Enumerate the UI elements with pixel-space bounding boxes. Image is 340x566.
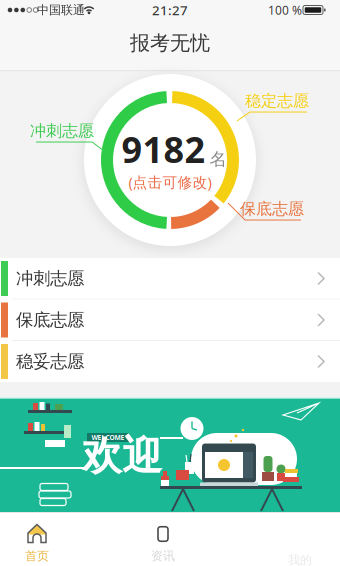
staticText: 保底志愿 (16, 309, 84, 331)
button[interactable]: 首页 (0, 512, 74, 566)
staticText: 资讯 (151, 549, 175, 563)
button[interactable]: 保底志愿 (0, 299, 340, 340)
staticText: 报考无忧 (130, 31, 210, 55)
staticText: 欢迎 (82, 431, 162, 480)
staticText: 100 % (268, 2, 302, 18)
staticText: 保底志愿 (240, 199, 304, 219)
staticText: 9182 (121, 125, 205, 173)
staticText: 我的 (288, 553, 312, 566)
staticText: 21:27 (152, 1, 188, 19)
staticText: 中国联通 (37, 3, 85, 17)
button[interactable]: 冲刺志愿 (0, 258, 340, 299)
staticText: 首页 (25, 549, 49, 563)
staticText: WELCOME (91, 433, 124, 442)
staticText: 稳定志愿 (245, 91, 309, 111)
staticText: 稳妥志愿 (16, 351, 84, 372)
staticText: 名 (209, 149, 226, 170)
staticText: 冲刺志愿 (16, 268, 84, 289)
button[interactable]: (点击可修改) (128, 172, 211, 192)
staticText: (点击可修改) (128, 172, 211, 192)
button[interactable]: 资讯 (126, 512, 200, 566)
button[interactable]: 稳妥志愿 (0, 341, 340, 382)
staticText: 冲刺志愿 (30, 121, 94, 141)
